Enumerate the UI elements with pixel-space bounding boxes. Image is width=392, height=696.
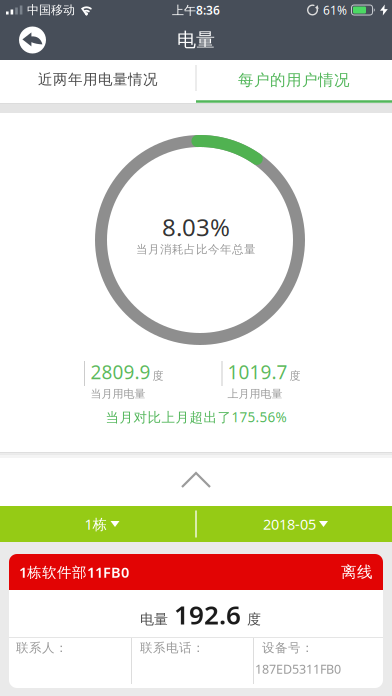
staticText: 联系电话： [140, 640, 205, 656]
staticText: 度 [289, 369, 300, 383]
staticText: 1栋 [84, 514, 107, 534]
staticText: 1栋软件部11FB0 [19, 562, 129, 582]
staticText: 离线 [341, 562, 373, 582]
button[interactable]: 近两年用电量情况 [0, 60, 196, 103]
button[interactable]: 1栋 [0, 506, 195, 542]
staticText: 2809.9 [90, 359, 150, 385]
staticText: 每户的用户情况 [238, 70, 350, 90]
staticText: 电量 [177, 28, 215, 52]
button[interactable]: 1栋软件部11FB0 [9, 554, 383, 688]
staticText: 当月对比上月超出了175.56% [105, 408, 286, 426]
button[interactable]: 2018-05 [197, 506, 392, 542]
staticText: 2018-05 [263, 514, 316, 534]
staticText: 电量 [140, 611, 168, 628]
staticText: 192.6 [174, 597, 241, 632]
staticText: 1019.7 [227, 359, 287, 385]
staticText: 当月用电量 [90, 387, 145, 401]
staticText: 中国移动 [27, 2, 75, 17]
staticText: 61% [323, 2, 347, 18]
staticText: 设备号： [262, 640, 314, 656]
staticText: 度 [152, 369, 163, 383]
staticText: 8.03% [162, 211, 230, 243]
staticText: 当月消耗占比今年总量 [136, 242, 256, 257]
staticText: 上月用电量 [227, 387, 282, 401]
staticText: 上午8:36 [172, 2, 220, 18]
staticText: 187ED5311FB0 [255, 660, 341, 677]
staticText: 联系人： [16, 640, 68, 656]
staticText: 近两年用电量情况 [38, 70, 158, 89]
staticText: 度 [247, 611, 261, 628]
button[interactable]: 每户的用户情况 [196, 60, 392, 103]
button[interactable] [0, 458, 392, 506]
button[interactable] [19, 26, 46, 53]
